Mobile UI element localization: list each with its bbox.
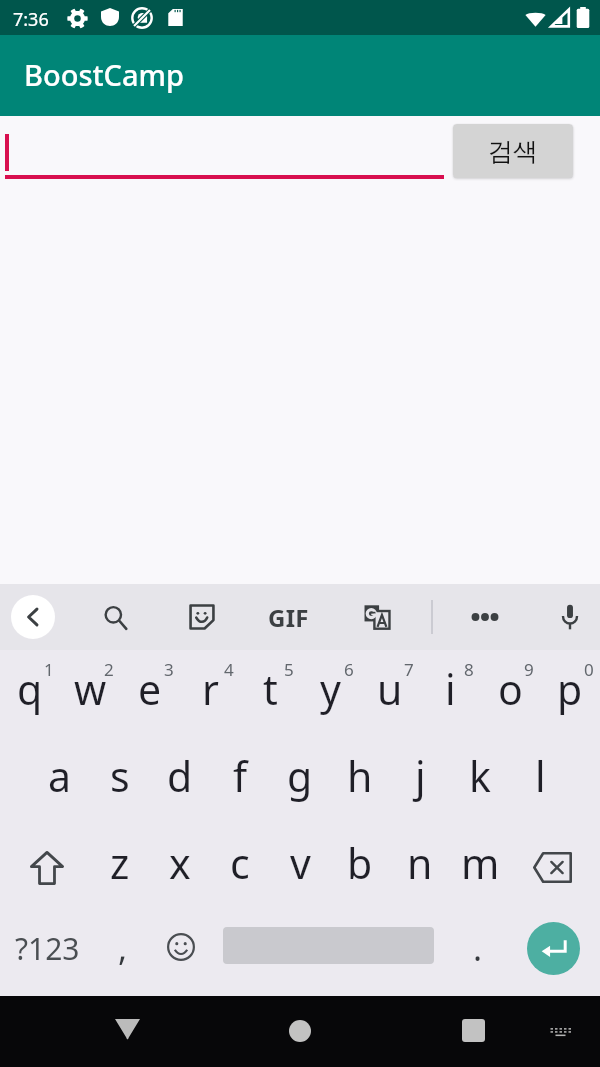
button[interactable]: o (480, 650, 540, 737)
staticText: a (48, 748, 72, 804)
staticText: w (74, 661, 107, 717)
staticText: 5 (284, 658, 294, 681)
staticText: , (118, 925, 128, 971)
button[interactable]: m (450, 824, 510, 911)
button[interactable]: Search input (5, 126, 444, 179)
staticText: j (415, 748, 426, 804)
button[interactable]: Emoji (155, 904, 207, 989)
button[interactable]: Backspace (510, 824, 600, 911)
staticText: e (138, 661, 162, 717)
staticText: 6 (344, 658, 354, 681)
staticText: 8 (464, 658, 474, 681)
button[interactable]: b (330, 824, 390, 911)
staticText: GIF (268, 601, 309, 634)
button[interactable]: u (360, 650, 420, 737)
staticText: ?123 (15, 928, 80, 969)
button[interactable]: x (150, 824, 210, 911)
staticText: k (469, 748, 491, 804)
staticText: g (287, 748, 313, 804)
button[interactable]: Space (211, 903, 446, 988)
staticText: 1 (44, 658, 54, 681)
button[interactable]: t (240, 650, 300, 737)
staticText: p (557, 661, 583, 717)
staticText: f (233, 748, 248, 804)
button[interactable]: n (390, 824, 450, 911)
button[interactable]: Switch keyboard (530, 996, 590, 1067)
staticText: 검색 (488, 136, 538, 167)
staticText: 7:36 (13, 7, 49, 32)
button[interactable]: h (330, 737, 390, 824)
button[interactable]: i (420, 650, 480, 737)
button[interactable]: v (270, 824, 330, 911)
staticText: m (461, 835, 500, 891)
staticText: i (445, 661, 456, 717)
button[interactable]: Enter (508, 906, 598, 991)
staticText: r (202, 661, 219, 717)
staticText: 2 (104, 658, 114, 681)
button[interactable]: q (0, 650, 60, 737)
staticText: . (473, 925, 483, 971)
staticText: h (347, 748, 373, 804)
staticText: u (377, 661, 403, 717)
button[interactable]: c (210, 824, 270, 911)
button[interactable]: Search (92, 584, 138, 650)
button[interactable]: g (270, 737, 330, 824)
button[interactable]: Translate (354, 584, 400, 650)
staticText: 3 (164, 658, 174, 681)
button[interactable]: d (150, 737, 210, 824)
staticText: s (110, 748, 130, 804)
button[interactable]: Recents (433, 996, 513, 1067)
button[interactable]: j (390, 737, 450, 824)
button[interactable]: w (60, 650, 120, 737)
button[interactable]: f (210, 737, 270, 824)
button[interactable]: More options (462, 584, 508, 650)
button[interactable]: Stickers (179, 584, 225, 650)
button[interactable]: Home (260, 996, 340, 1067)
button[interactable]: ?123 (4, 911, 90, 996)
staticText: n (407, 835, 433, 891)
button[interactable]: z (90, 824, 150, 911)
staticText: c (230, 835, 250, 891)
button[interactable]: Voice input (547, 584, 593, 650)
staticText: 7 (404, 658, 414, 681)
staticText: d (167, 748, 193, 804)
staticText: v (290, 835, 311, 891)
button[interactable]: Close suggestions (11, 595, 55, 639)
staticText: q (17, 661, 43, 717)
button[interactable]: , (96, 911, 150, 996)
button[interactable]: Back (87, 996, 167, 1067)
staticText: BoostCamp (24, 55, 185, 94)
button[interactable]: y (300, 650, 360, 737)
button[interactable]: 검색 (453, 124, 573, 178)
button[interactable]: p (540, 650, 600, 737)
button[interactable]: . (452, 911, 504, 996)
button[interactable]: a (30, 737, 90, 824)
staticText: b (347, 835, 373, 891)
staticText: t (263, 661, 278, 717)
button[interactable]: Shift (0, 824, 90, 911)
staticText: o (498, 661, 523, 717)
staticText: z (110, 835, 130, 891)
button[interactable]: k (450, 737, 510, 824)
staticText: 9 (524, 658, 534, 681)
staticText: x (169, 835, 191, 891)
button[interactable]: s (90, 737, 150, 824)
staticText: 0 (584, 658, 594, 681)
button[interactable]: e (120, 650, 180, 737)
button[interactable]: r (180, 650, 240, 737)
button[interactable]: l (510, 737, 570, 824)
staticText: 4 (224, 658, 234, 681)
staticText: l (535, 748, 546, 804)
staticText: y (320, 661, 341, 717)
button[interactable]: GIF (265, 584, 311, 650)
